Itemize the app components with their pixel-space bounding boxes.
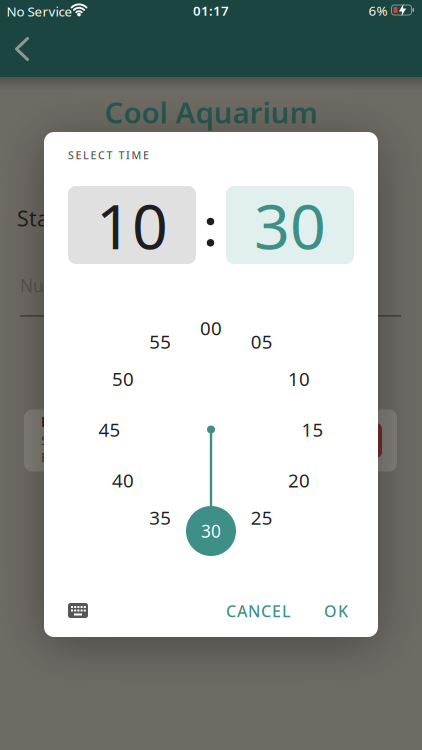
- staticText: 10: [288, 366, 310, 391]
- staticText: 40: [112, 468, 134, 493]
- button[interactable]: 10: [68, 186, 196, 264]
- staticText: 30: [254, 183, 326, 267]
- staticText: 30: [201, 519, 221, 542]
- staticText: 20: [288, 468, 310, 493]
- staticText: No Service: [6, 2, 72, 20]
- button[interactable]: 30: [226, 186, 354, 264]
- staticText: 10: [96, 183, 168, 267]
- staticText: 25: [251, 505, 273, 530]
- button[interactable]: Back: [0, 27, 44, 71]
- staticText: Start Time: [17, 204, 122, 232]
- staticText: 05: [251, 329, 273, 354]
- staticText: 6%: [368, 2, 387, 19]
- staticText: 50: [112, 366, 134, 391]
- staticText: Every day: [41, 448, 101, 466]
- button[interactable]: 35: [149, 505, 171, 530]
- button[interactable]: 40: [112, 468, 134, 493]
- staticText: 35: [149, 505, 171, 530]
- button[interactable]: 50: [112, 366, 134, 391]
- button[interactable]: Switch to text input: [60, 594, 96, 626]
- staticText: 15: [301, 417, 323, 442]
- staticText: Cool Aquarium: [104, 92, 317, 131]
- staticText: Number of fish: [20, 274, 143, 297]
- staticText: 00: [200, 316, 222, 340]
- staticText: 55: [149, 329, 171, 354]
- button[interactable]: 00: [200, 316, 222, 340]
- staticText: CANCEL: [226, 600, 291, 622]
- button[interactable]: 45: [98, 417, 120, 442]
- staticText: SELECT TIME: [68, 148, 149, 162]
- button[interactable]: 20: [288, 468, 310, 493]
- staticText: OK: [324, 600, 348, 622]
- staticText: 01:17: [193, 2, 229, 19]
- button[interactable]: CANCEL: [218, 593, 299, 629]
- button[interactable]: 05: [251, 329, 273, 354]
- staticText: Starts at 10:00: [41, 431, 131, 449]
- button[interactable]: 55: [149, 329, 171, 354]
- button[interactable]: OK: [316, 593, 356, 629]
- staticText: 45: [98, 417, 120, 442]
- button[interactable]: 25: [251, 505, 273, 530]
- button[interactable]: 15: [301, 417, 323, 442]
- staticText: Morning Feed: [41, 413, 132, 431]
- button[interactable]: 10: [288, 366, 310, 391]
